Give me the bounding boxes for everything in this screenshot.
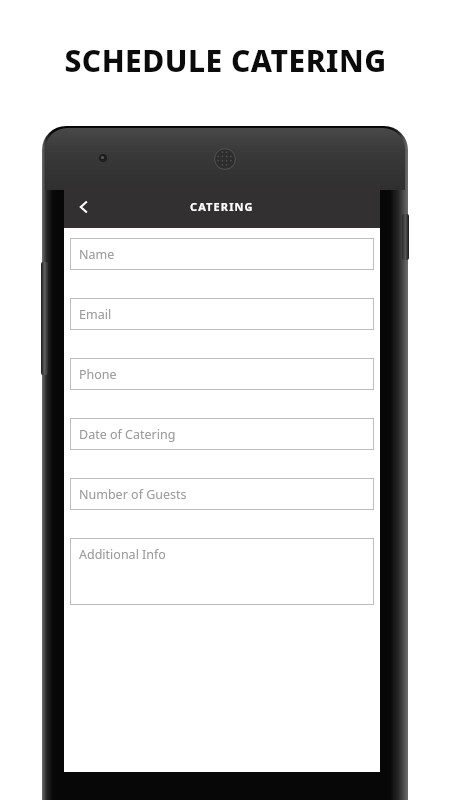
button[interactable]: Email [70, 298, 374, 330]
staticText: Name [79, 246, 115, 263]
button[interactable]: Phone [70, 358, 374, 390]
staticText: SCHEDULE CATERING [64, 40, 387, 81]
staticText: Number of Guests [79, 486, 187, 503]
button[interactable]: Additional Info [70, 538, 374, 605]
button[interactable]: Date of Catering [70, 418, 374, 450]
staticText: CATERING [190, 199, 254, 214]
staticText: Date of Catering [79, 426, 176, 443]
staticText: Additional Info [79, 546, 166, 563]
staticText: Email [79, 306, 112, 323]
button[interactable]: Name [70, 238, 374, 270]
button[interactable]: Back [64, 187, 104, 227]
staticText: Phone [79, 366, 117, 383]
button[interactable]: Number of Guests [70, 478, 374, 510]
